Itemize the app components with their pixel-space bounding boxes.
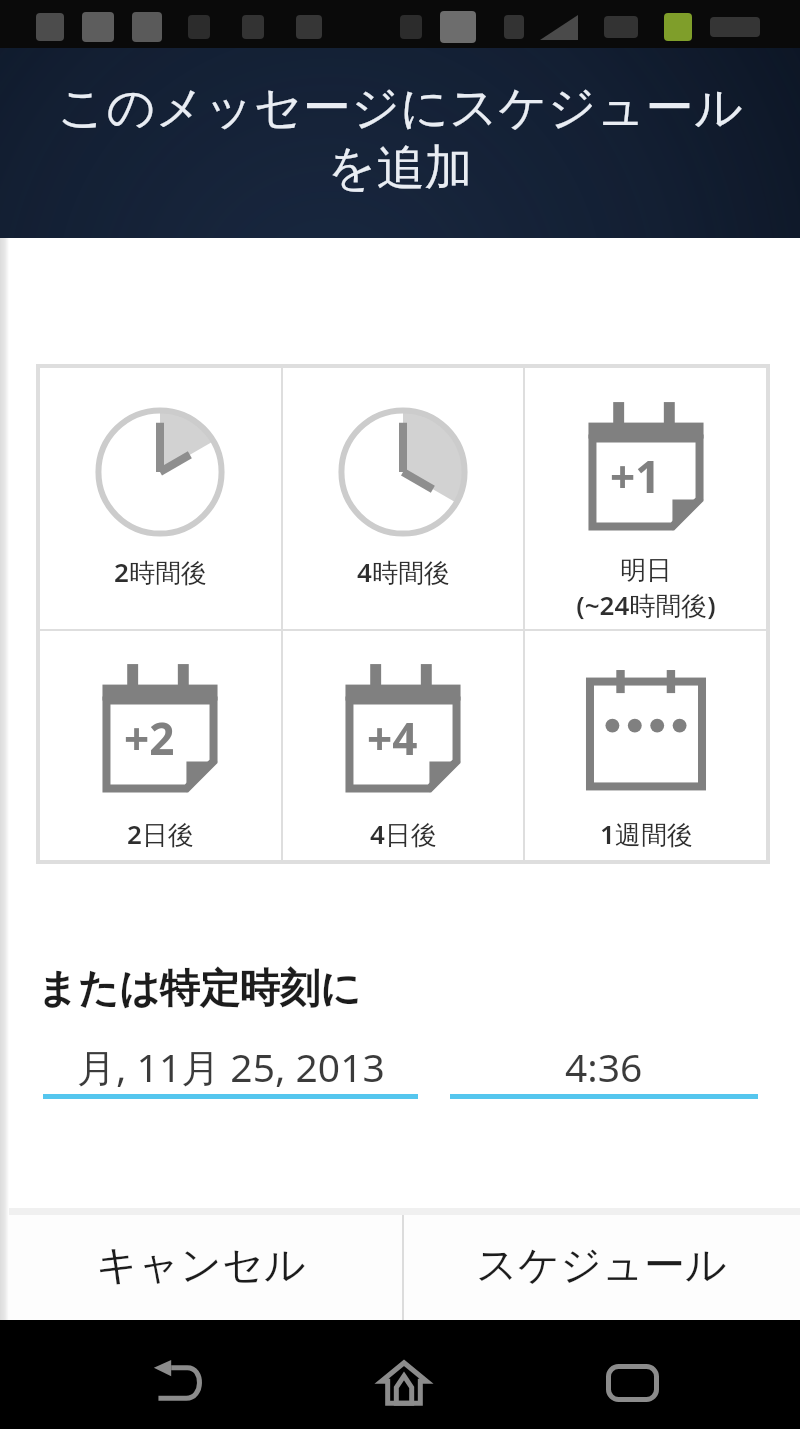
button[interactable]: Back xyxy=(122,1328,232,1429)
staticText: このメッセージにスケジュール を追加 xyxy=(57,78,743,198)
button[interactable]: 2時間後 xyxy=(38,366,282,630)
staticText: (~24時間後) xyxy=(576,587,716,623)
staticText: +1 xyxy=(610,446,661,506)
staticText: 2日後 xyxy=(127,816,194,852)
button[interactable]: 4時間後 xyxy=(282,366,524,630)
button[interactable]: Recents xyxy=(577,1328,687,1429)
button[interactable]: キャンセル xyxy=(0,1208,402,1320)
staticText: 4:36 xyxy=(565,1040,643,1093)
button[interactable]: Home xyxy=(349,1328,459,1429)
button[interactable]: 4:36 xyxy=(450,1038,758,1099)
button[interactable]: +2 xyxy=(38,630,282,862)
staticText: +2 xyxy=(124,708,175,768)
staticText: 1週間後 xyxy=(600,816,693,852)
staticText: スケジュール xyxy=(476,1240,727,1292)
staticText: 明日 xyxy=(620,554,672,587)
button[interactable]: スケジュール xyxy=(402,1208,800,1320)
staticText: キャンセル xyxy=(96,1240,306,1292)
button[interactable]: +4 xyxy=(282,630,524,862)
staticText: または特定時刻に xyxy=(37,963,361,1013)
button[interactable]: 月, 11月 25, 2013 xyxy=(43,1038,418,1099)
button[interactable]: +1 xyxy=(524,366,768,630)
staticText: +4 xyxy=(367,708,418,768)
staticText: 4日後 xyxy=(370,816,437,852)
button[interactable]: 1週間後 xyxy=(524,630,768,862)
staticText: 月, 11月 25, 2013 xyxy=(77,1040,385,1093)
staticText: 4時間後 xyxy=(357,554,450,590)
staticText: 2時間後 xyxy=(114,554,207,590)
